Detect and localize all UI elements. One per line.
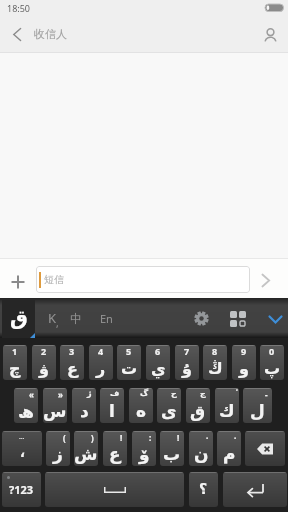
button[interactable] [6,23,28,45]
staticText: , [56,316,59,330]
staticText: ع [67,359,78,378]
button[interactable]: ?123 [2,472,41,507]
button[interactable] [228,309,248,329]
staticText: ج [200,389,206,398]
button[interactable]: 短信 [36,266,250,293]
button[interactable] [245,431,285,466]
button[interactable]: » [43,388,67,423]
staticText: گ [140,389,149,398]
staticText: د [80,401,89,421]
button[interactable]: « [14,388,38,423]
staticText: ى [161,401,177,421]
staticText: چ [9,359,21,378]
staticText: ب [163,444,181,464]
button[interactable]: En [93,298,119,338]
button[interactable]: ح [157,388,181,423]
staticText: ! [120,432,123,443]
staticText: K [48,309,57,327]
button[interactable]: 9 [232,345,256,380]
button[interactable]: ( [46,431,70,466]
staticText: ز [53,444,63,464]
staticText: ع [109,444,121,464]
button[interactable]: 6 [146,345,170,380]
staticText: 6 [155,345,161,357]
button[interactable]: ق [2,300,35,338]
staticText: ت [121,359,138,378]
button[interactable] [6,270,30,294]
button[interactable]: 2 [32,345,56,380]
button[interactable]: 4 [89,345,113,380]
button[interactable]: ج [186,388,210,423]
staticText: ق [190,401,206,421]
staticText: · [234,432,237,443]
staticText: ف [110,389,120,398]
button[interactable] [223,472,287,507]
staticText: پ [264,359,281,378]
button[interactable] [45,472,184,507]
staticText: 0 [269,345,275,357]
button[interactable]: … [2,431,42,466]
button[interactable]: 5 [117,345,141,380]
staticText: ي [151,359,166,378]
staticText: 1 [12,345,18,357]
staticText: ( [63,432,66,443]
button[interactable]: · [217,431,241,466]
staticText: ا [109,401,115,421]
staticText: ۋ [39,359,49,378]
staticText: ە [136,401,147,421]
staticText: ر [96,359,106,378]
button[interactable]: - [243,388,272,423]
staticText: س [43,401,67,421]
staticText: ك [219,401,235,421]
staticText: « [29,389,34,400]
button[interactable]: 3 [60,345,84,380]
staticText: … [19,432,25,442]
staticText: ش [74,444,98,464]
button[interactable]: ! [160,431,184,466]
button[interactable]: ٔ [215,388,239,423]
staticText: ڭ [208,359,223,378]
button[interactable] [190,307,212,329]
staticText: ق [10,306,28,329]
button[interactable]: 1 [3,345,27,380]
button[interactable]: 7 [175,345,199,380]
button[interactable]: 8 [203,345,227,380]
staticText: En [100,311,113,326]
staticText: 中 [70,311,82,326]
staticText: 5 [126,345,132,357]
button[interactable]: ژ [72,388,96,423]
staticText: ۇ [182,359,192,378]
button[interactable]: K [40,298,64,338]
button[interactable]: گ [129,388,153,423]
button[interactable] [264,310,286,328]
button[interactable]: : [132,431,156,466]
staticText: ح [171,389,177,398]
button[interactable]: 0 [260,345,284,380]
staticText: ل [250,401,265,421]
staticText: ن [194,444,209,464]
button[interactable]: ! [103,431,127,466]
staticText: ھ [18,401,34,421]
staticText: 9 [241,345,247,357]
staticText: ?123 [9,482,34,497]
staticText: 2 [41,345,47,357]
button[interactable]: 中 [63,298,89,338]
button[interactable]: ف [100,388,124,423]
staticText: 3 [69,345,75,357]
staticText: 短信 [44,273,64,286]
staticText: · [206,432,209,443]
staticText: و [239,359,249,378]
staticText: 18:50 [7,2,31,14]
staticText: - [265,389,268,400]
staticText: ، [20,445,25,460]
button[interactable]: ؟ [189,472,218,507]
button[interactable] [258,24,282,48]
staticText: 收信人 [34,27,67,41]
staticText: ؟ [199,481,208,497]
button[interactable]: · [189,431,213,466]
button[interactable]: ) [74,431,98,466]
button[interactable] [254,268,278,292]
staticText: م [223,444,236,464]
staticText: ) [91,432,94,443]
staticText: 7 [184,345,190,357]
